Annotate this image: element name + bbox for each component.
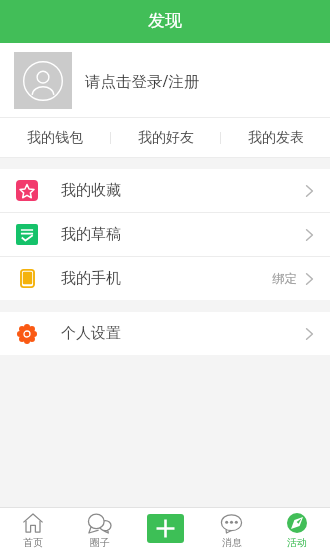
- staticText: 我的草稿: [61, 225, 121, 244]
- button[interactable]: 我的手机: [0, 257, 330, 300]
- button[interactable]: 我的发表: [221, 118, 330, 157]
- staticText: 我的好友: [138, 129, 194, 147]
- button[interactable]: 消息: [198, 508, 264, 550]
- staticText: 请点击登录/注册: [85, 70, 200, 91]
- staticText: 个人设置: [61, 324, 121, 343]
- button[interactable]: 圈子: [66, 508, 132, 550]
- button[interactable]: 活动: [264, 508, 330, 550]
- button[interactable]: 我的草稿: [0, 213, 330, 256]
- staticText: 我的发表: [248, 129, 304, 147]
- staticText: 首页: [23, 536, 43, 549]
- button[interactable]: 个人设置: [0, 312, 330, 355]
- staticText: 我的钱包: [27, 129, 83, 147]
- button[interactable]: 请点击登录/注册: [0, 43, 330, 117]
- button[interactable]: 我的收藏: [0, 169, 330, 212]
- staticText: 圈子: [90, 536, 110, 549]
- button[interactable]: Add new post: [132, 508, 198, 550]
- staticText: 我的收藏: [61, 181, 121, 200]
- button[interactable]: 我的好友: [111, 118, 220, 157]
- button[interactable]: 我的钱包: [0, 118, 110, 157]
- staticText: 活动: [287, 536, 307, 549]
- staticText: 绑定: [272, 271, 297, 287]
- button[interactable]: 首页: [0, 508, 66, 550]
- staticText: 我的手机: [61, 269, 121, 288]
- staticText: 消息: [222, 536, 242, 549]
- staticText: 发现: [148, 10, 182, 31]
